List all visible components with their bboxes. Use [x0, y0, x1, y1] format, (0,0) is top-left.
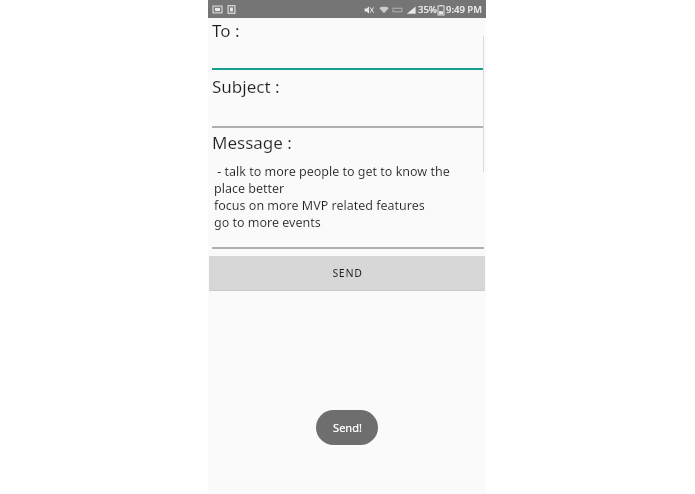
button[interactable]: Message :: [208, 129, 486, 247]
staticText: SEND: [332, 266, 363, 280]
button[interactable]: To :: [208, 18, 486, 69]
staticText: Send!: [333, 420, 362, 435]
staticText: Message :: [212, 131, 292, 154]
staticText: 35%: [418, 3, 437, 16]
button[interactable]: Subject :: [208, 72, 486, 126]
staticText: Subject :: [212, 75, 280, 98]
staticText: - talk to more people to get to know the…: [214, 163, 450, 231]
button[interactable]: SEND: [209, 256, 485, 290]
button[interactable]: Send: [316, 410, 378, 445]
staticText: 9:49 PM: [446, 3, 482, 16]
staticText: To :: [212, 19, 240, 42]
